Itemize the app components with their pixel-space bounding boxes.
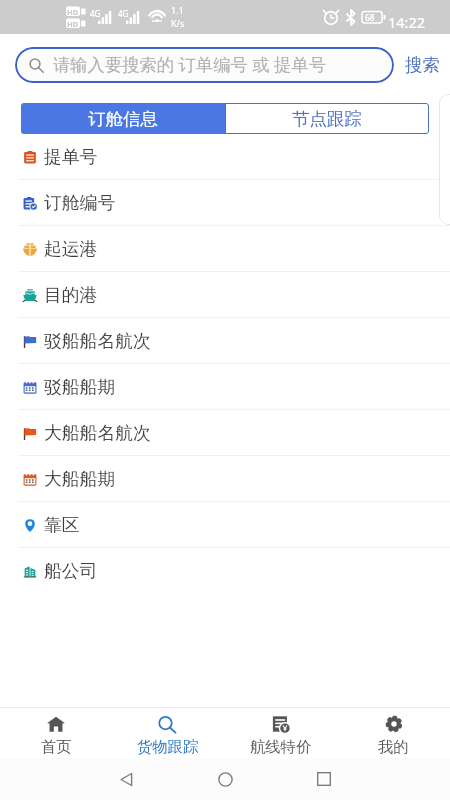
staticText: 驳船船期 <box>44 376 116 398</box>
staticText: 货物跟踪 <box>137 737 199 756</box>
staticText: 提单号 <box>44 146 98 168</box>
staticText: 我的 <box>378 737 409 756</box>
button[interactable]: 订舱编号 <box>0 180 450 226</box>
staticText: 航线特价 <box>250 737 312 756</box>
staticText: 船公司 <box>44 560 98 582</box>
staticText: HD <box>67 19 79 29</box>
button[interactable]: 货物跟踪 <box>112 708 224 759</box>
button[interactable]: 节点跟踪 <box>225 103 429 134</box>
staticText: 68 <box>365 12 375 24</box>
button[interactable]: 靠区 <box>0 502 450 548</box>
button[interactable]: 大船船名航次 <box>0 410 450 456</box>
staticText: 订舱信息 <box>88 108 158 130</box>
staticText: 目的港 <box>44 284 98 306</box>
button[interactable]: 提单号 <box>0 134 450 180</box>
staticText: 大船船名航次 <box>44 422 151 444</box>
button[interactable]: 驳船船期 <box>0 364 450 410</box>
staticText: 4G <box>118 8 129 19</box>
staticText: 14:22 <box>388 12 426 32</box>
staticText: 4G <box>90 8 101 19</box>
staticText: 大船船期 <box>44 468 116 490</box>
button[interactable]: 船公司 <box>0 548 450 594</box>
staticText: 搜索 <box>405 54 440 76</box>
staticText: 起运港 <box>44 238 98 260</box>
button[interactable]: Home <box>205 759 245 799</box>
button[interactable]: 订舱信息 <box>21 103 225 134</box>
staticText: 首页 <box>41 737 72 756</box>
staticText: 1.1 <box>171 4 184 16</box>
button[interactable]: 搜索 <box>398 47 446 83</box>
button[interactable]: Back <box>106 759 146 799</box>
button[interactable]: Recents <box>304 759 344 799</box>
button[interactable]: 首页 <box>0 708 112 759</box>
button[interactable]: 起运港 <box>0 226 450 272</box>
staticText: 靠区 <box>44 514 80 536</box>
staticText: 订舱编号 <box>44 192 116 214</box>
button[interactable]: 航线特价 <box>224 708 337 759</box>
staticText: 驳船船名航次 <box>44 330 151 352</box>
staticText: HD <box>67 7 79 17</box>
button[interactable]: 我的 <box>337 708 450 759</box>
button[interactable]: 大船船期 <box>0 456 450 502</box>
staticText: 节点跟踪 <box>292 108 362 130</box>
button[interactable]: 请输入要搜索的 订单编号 或 提单号 <box>15 47 394 83</box>
button[interactable]: 驳船船名航次 <box>0 318 450 364</box>
staticText: 请输入要搜索的 订单编号 或 提单号 <box>53 53 326 77</box>
staticText: K/s <box>171 17 185 29</box>
button[interactable]: 目的港 <box>0 272 450 318</box>
